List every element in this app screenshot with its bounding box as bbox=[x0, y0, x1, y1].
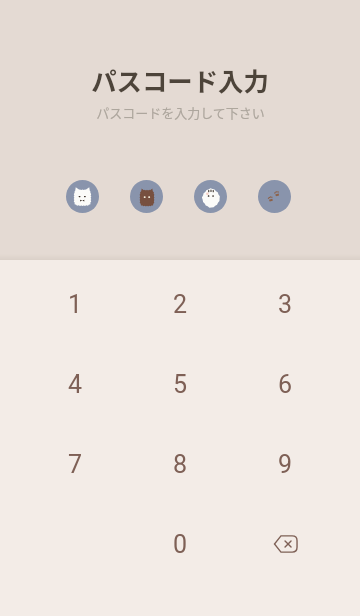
staticText: 3 bbox=[278, 290, 293, 319]
staticText: 6 bbox=[278, 370, 293, 399]
button[interactable]: 6 bbox=[233, 344, 338, 424]
staticText: 9 bbox=[278, 450, 293, 479]
staticText: 1 bbox=[68, 290, 83, 319]
staticText: 8 bbox=[173, 450, 188, 479]
button[interactable]: 3 bbox=[233, 264, 338, 344]
button[interactable]: 7 bbox=[22, 424, 128, 504]
button[interactable]: 5 bbox=[128, 344, 233, 424]
staticText: パスコード入力 bbox=[91, 62, 269, 99]
button[interactable]: 4 bbox=[22, 344, 128, 424]
staticText: 5 bbox=[173, 370, 188, 399]
button[interactable]: Backspace bbox=[233, 504, 338, 584]
button[interactable]: 0 bbox=[128, 504, 233, 584]
staticText: パスコードを入力して下さい bbox=[96, 103, 265, 122]
staticText: 2 bbox=[173, 290, 188, 319]
staticText: 0 bbox=[173, 530, 188, 559]
button[interactable]: 9 bbox=[233, 424, 338, 504]
button[interactable]: 2 bbox=[128, 264, 233, 344]
button[interactable]: 8 bbox=[128, 424, 233, 504]
staticText: 4 bbox=[68, 370, 83, 399]
button[interactable]: 1 bbox=[22, 264, 128, 344]
staticText: 7 bbox=[68, 450, 83, 479]
